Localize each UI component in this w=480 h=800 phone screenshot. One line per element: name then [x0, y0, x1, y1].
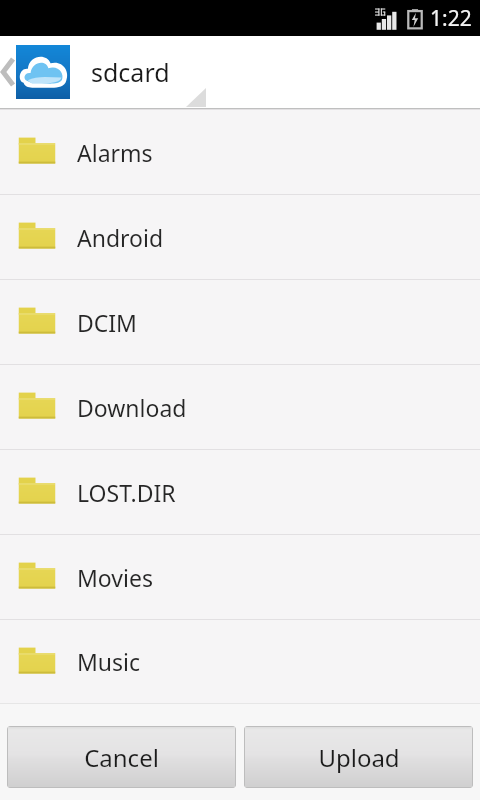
button[interactable]: Up	[0, 36, 72, 108]
button[interactable]: LOST.DIR	[0, 450, 480, 534]
staticText: Cancel	[84, 741, 159, 774]
button[interactable]: DCIM	[0, 280, 480, 364]
staticText: 1:22	[430, 4, 472, 33]
button[interactable]: Android	[0, 195, 480, 279]
button[interactable]: Upload	[244, 726, 473, 788]
staticText: DCIM	[77, 307, 137, 338]
button[interactable]: Movies	[0, 535, 480, 619]
staticText: Music	[77, 646, 141, 677]
button[interactable]: Alarms	[0, 110, 480, 194]
button[interactable]: Music	[0, 620, 480, 703]
staticText: Download	[77, 392, 187, 423]
staticText: Alarms	[77, 137, 153, 168]
button[interactable]: Cancel	[7, 726, 236, 788]
staticText: Upload	[318, 741, 400, 774]
staticText: Movies	[77, 562, 153, 593]
staticText: Android	[77, 222, 164, 253]
staticText: sdcard	[91, 55, 170, 89]
staticText: LOST.DIR	[77, 477, 176, 508]
button[interactable]: Download	[0, 365, 480, 449]
